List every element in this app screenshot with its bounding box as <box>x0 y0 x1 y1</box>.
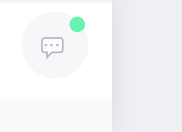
button[interactable]: Conversation avatar, online <box>21 11 88 78</box>
